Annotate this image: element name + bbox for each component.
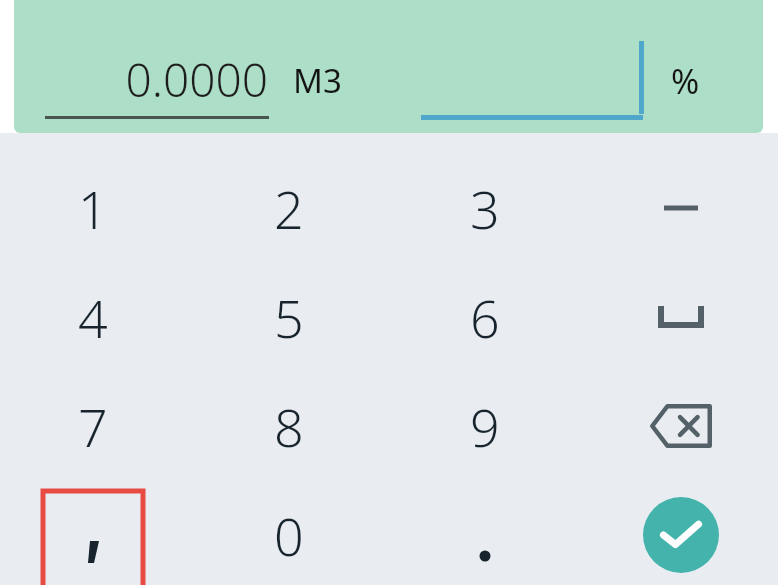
staticText: 4 <box>78 282 108 353</box>
staticText: 9 <box>470 391 500 462</box>
staticText: 3 <box>470 173 500 244</box>
staticText: % <box>671 58 700 104</box>
button[interactable]: 4 <box>44 265 142 369</box>
staticText: 0 <box>274 500 304 571</box>
button[interactable]: 6 <box>436 265 534 369</box>
staticText: 7 <box>78 391 108 462</box>
button[interactable]: 0 <box>240 483 338 585</box>
button[interactable]: 9 <box>436 374 534 478</box>
button[interactable] <box>43 491 143 585</box>
button[interactable]: Confirm <box>643 497 719 573</box>
button[interactable]: Minus <box>632 156 730 260</box>
button[interactable]: Space <box>632 265 730 369</box>
button[interactable]: 7 <box>44 374 142 478</box>
staticText: 1 <box>78 173 108 244</box>
button[interactable]: 1 <box>44 156 142 260</box>
staticText: М3 <box>293 58 342 103</box>
staticText: 8 <box>274 391 304 462</box>
staticText: 2 <box>274 173 304 244</box>
staticText: 6 <box>470 282 500 353</box>
button[interactable]: 0.0000 <box>98 48 268 111</box>
button[interactable]: Backspace <box>632 374 730 478</box>
button[interactable]: 8 <box>240 374 338 478</box>
button[interactable] <box>436 483 534 585</box>
button[interactable]: 3 <box>436 156 534 260</box>
button[interactable]: 5 <box>240 265 338 369</box>
button[interactable]: 2 <box>240 156 338 260</box>
staticText: 5 <box>274 282 304 353</box>
